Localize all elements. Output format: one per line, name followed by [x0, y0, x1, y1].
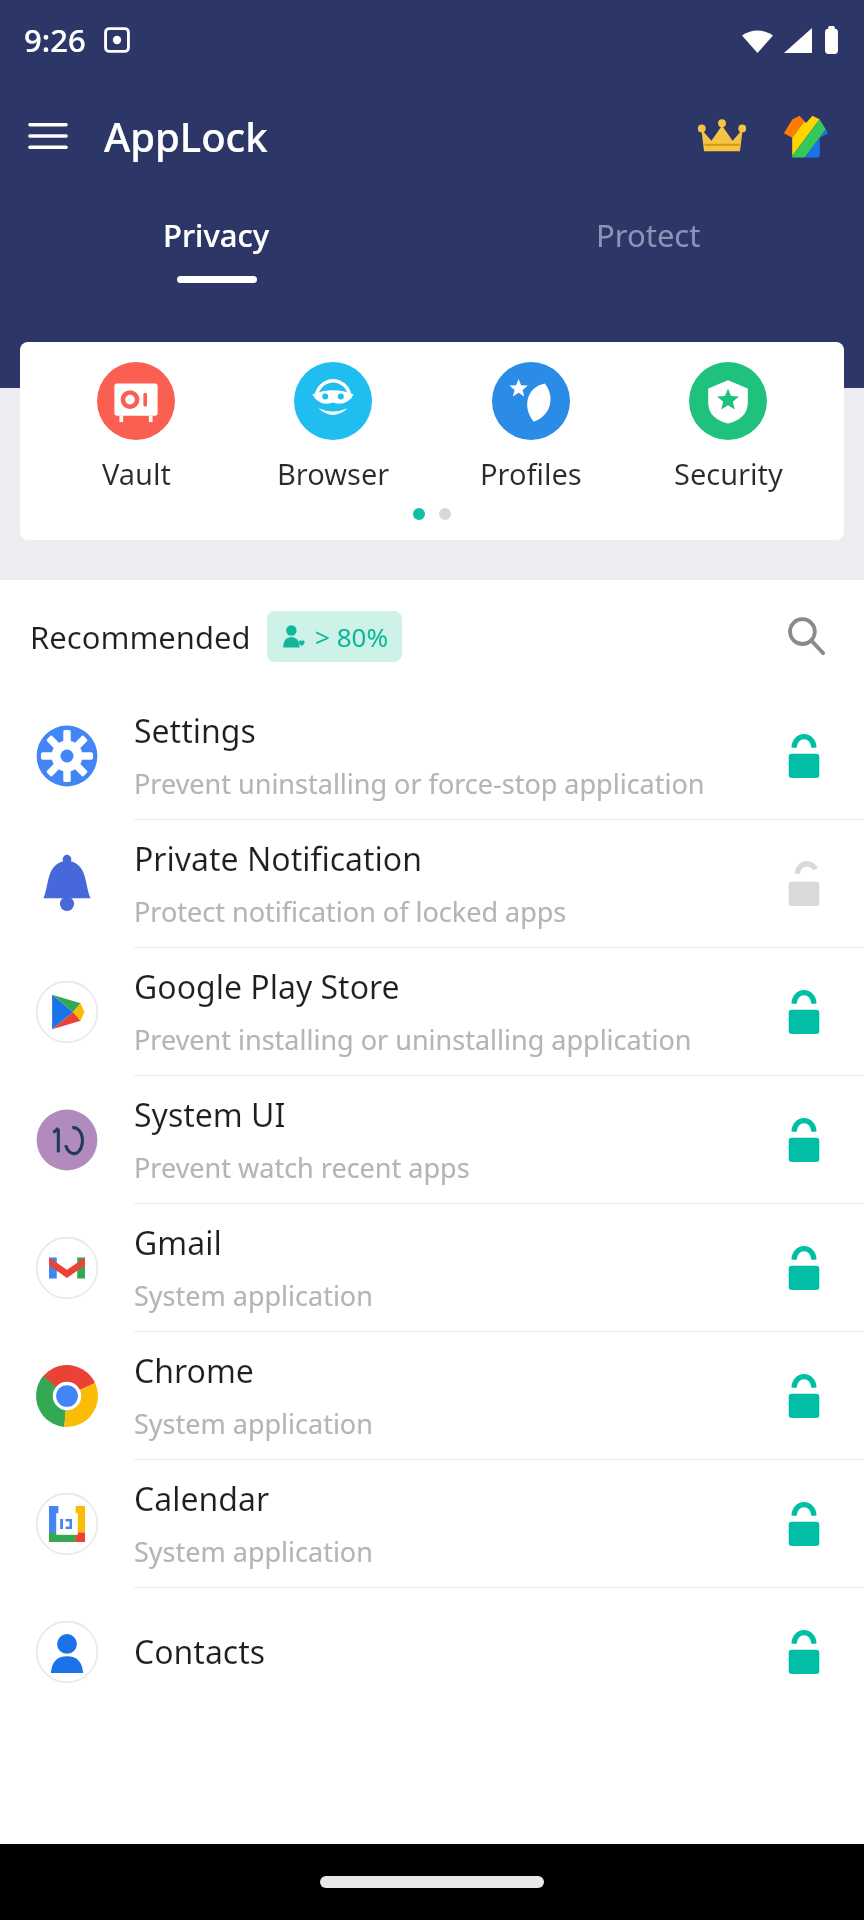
button[interactable]: Profiles [441, 362, 621, 493]
button[interactable]: Locked, tap to unlock [744, 1332, 864, 1459]
staticText: Security [674, 454, 783, 493]
button[interactable]: Privacy [0, 192, 432, 326]
staticText: Vault [102, 454, 171, 493]
button[interactable]: Settings [0, 692, 864, 819]
staticText: Chrome [134, 1349, 254, 1393]
staticText: AppLock [104, 109, 268, 163]
button[interactable]: System UI [0, 1076, 864, 1203]
button[interactable]: Open navigation menu [16, 104, 80, 168]
staticText: Protect notification of locked apps [134, 893, 567, 930]
button[interactable]: Browser [243, 362, 423, 493]
button[interactable]: Locked, tap to unlock [744, 692, 864, 819]
button[interactable]: Locked, tap to unlock [744, 1460, 864, 1587]
staticText: Recommended [30, 616, 251, 658]
staticText: Browser [277, 454, 390, 493]
staticText: Calendar [134, 1477, 270, 1521]
button[interactable]: Vault [46, 362, 226, 493]
staticText: Prevent uninstalling or force-stop appli… [134, 765, 705, 802]
staticText: System application [134, 1277, 373, 1314]
button[interactable]: Contacts [0, 1588, 864, 1715]
button[interactable]: Security [638, 362, 818, 493]
button[interactable]: Locked, tap to unlock [744, 948, 864, 1075]
button[interactable]: Chrome [0, 1332, 864, 1459]
button[interactable]: Google Play Store [0, 948, 864, 1075]
button[interactable]: Gmail [0, 1204, 864, 1331]
button[interactable]: Themes [768, 98, 844, 174]
button[interactable]: Locked, tap to unlock [744, 1588, 864, 1715]
button[interactable]: Locked, tap to unlock [744, 1204, 864, 1331]
staticText: Prevent installing or uninstalling appli… [134, 1021, 692, 1058]
button[interactable]: Calendar [0, 1460, 864, 1587]
staticText: System application [134, 1405, 373, 1442]
staticText: Settings [134, 709, 256, 753]
button[interactable]: Unlocked, tap to lock [744, 820, 864, 947]
staticText: > 80% [315, 619, 388, 654]
button[interactable]: Locked, tap to unlock [744, 1076, 864, 1203]
staticText: 9:26 [24, 19, 86, 61]
staticText: Profiles [480, 454, 582, 493]
staticText: Protect [596, 214, 701, 256]
button[interactable]: Home gesture bar [320, 1876, 544, 1888]
staticText: System application [134, 1533, 373, 1570]
staticText: Prevent watch recent apps [134, 1149, 470, 1186]
button[interactable]: VIP membership [684, 98, 760, 174]
staticText: Private Notification [134, 837, 422, 881]
button[interactable]: Private Notification [0, 820, 864, 947]
staticText: Contacts [134, 1630, 266, 1674]
staticText: System UI [134, 1093, 286, 1137]
staticText: Gmail [134, 1221, 222, 1265]
button[interactable]: Search apps [770, 600, 842, 672]
staticText: Privacy [163, 214, 270, 256]
staticText: Google Play Store [134, 965, 400, 1009]
button[interactable]: Protect [432, 192, 864, 326]
